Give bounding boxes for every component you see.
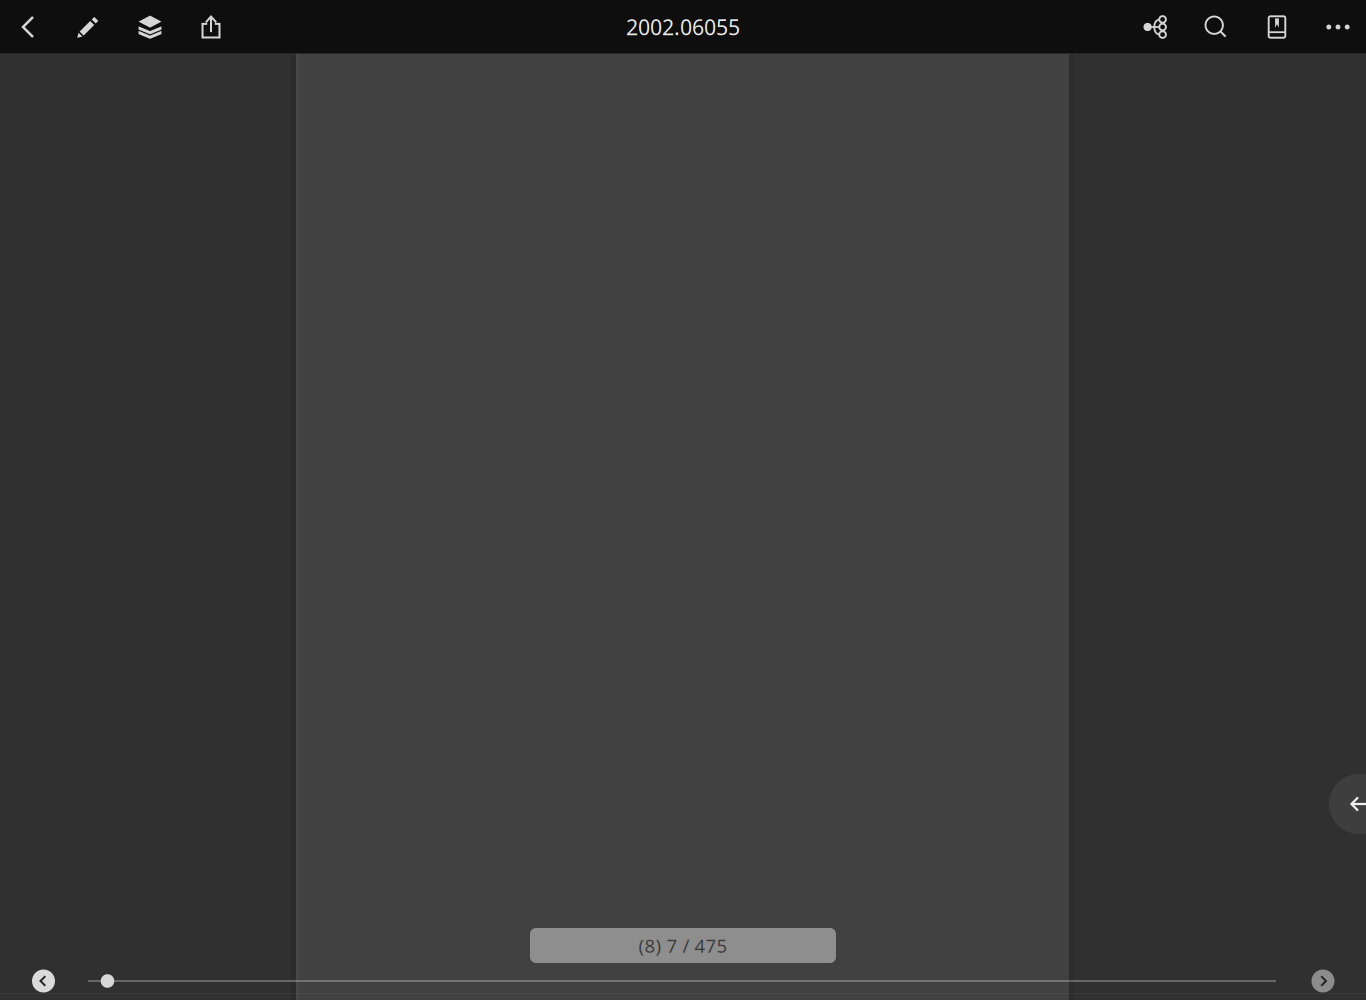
button[interactable]: Annotate	[64, 0, 112, 54]
staticText: 2002.06055	[626, 13, 740, 41]
button[interactable]: Previous page	[1329, 774, 1366, 834]
button[interactable]: Share	[187, 0, 235, 54]
staticText: (8) 7 / 475	[638, 933, 727, 958]
button[interactable]: Bookmarks	[1253, 0, 1301, 54]
button[interactable]: Next page	[1304, 962, 1342, 1000]
button[interactable]: Share document	[1131, 0, 1179, 54]
button[interactable]: Layers	[126, 0, 174, 54]
button[interactable]: More	[1314, 0, 1362, 54]
button[interactable]: Back	[4, 0, 52, 54]
button[interactable]: Search	[1192, 0, 1240, 54]
button[interactable]: (8) 7 / 475	[530, 928, 836, 963]
button[interactable]: Previous page	[24, 962, 62, 1000]
